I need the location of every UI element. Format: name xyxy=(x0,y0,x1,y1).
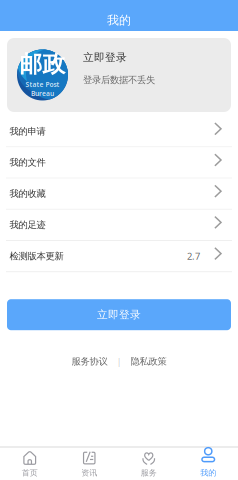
button[interactable]: 服务 xyxy=(119,451,178,477)
staticText: 服务协议 xyxy=(71,356,107,367)
button[interactable]: 服务协议 xyxy=(71,356,107,367)
staticText: 我的足迹 xyxy=(9,219,45,231)
staticText: 服务 xyxy=(141,468,157,478)
button[interactable]: 首页 xyxy=(0,451,59,477)
staticText: 我的文件 xyxy=(9,157,45,168)
staticText: 我的申请 xyxy=(9,126,45,137)
staticText: 登录后数据不丢失 xyxy=(83,74,155,86)
staticText: 立即登录 xyxy=(97,308,141,321)
button[interactable]: 我的收藏 xyxy=(0,179,238,210)
button[interactable]: 我的申请 xyxy=(0,116,238,147)
staticText: 我的 xyxy=(107,13,131,27)
staticText: 首页 xyxy=(22,468,38,478)
staticText: Bureau xyxy=(31,89,54,98)
staticText: 我的收藏 xyxy=(9,188,45,199)
staticText: | xyxy=(116,355,121,368)
button[interactable]: 我的足迹 xyxy=(0,210,238,241)
button[interactable]: 立即登录 xyxy=(7,299,231,330)
staticText: 检测版本更新 xyxy=(9,250,63,262)
staticText: 资讯 xyxy=(81,468,97,478)
button[interactable]: 我的文件 xyxy=(0,147,238,179)
staticText: 我的 xyxy=(200,468,216,478)
staticText: State Post xyxy=(25,80,59,89)
staticText: 立即登录 xyxy=(83,51,127,64)
button[interactable]: 隐私政策 xyxy=(130,356,166,367)
staticText: 2.7 xyxy=(187,250,200,262)
button[interactable]: 资讯 xyxy=(59,451,119,477)
staticText: 隐私政策 xyxy=(130,356,166,367)
button[interactable]: 我的 xyxy=(178,451,238,477)
button[interactable]: 检测版本更新 xyxy=(0,241,238,272)
staticText: 邮政 xyxy=(19,50,65,78)
